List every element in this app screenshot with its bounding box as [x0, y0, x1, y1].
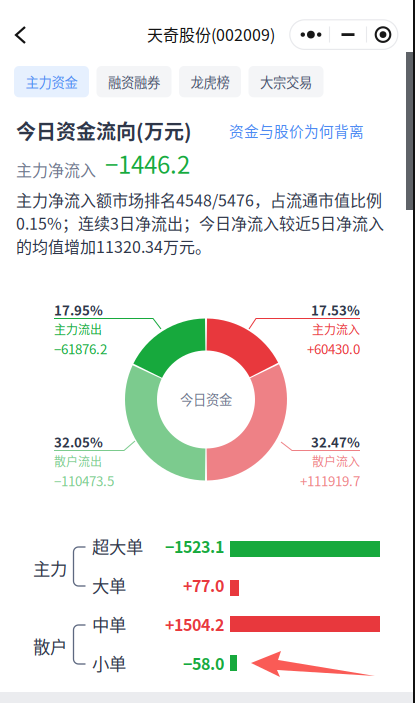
- staticText: 17.53%: [311, 300, 360, 319]
- staticText: 融资融券: [108, 72, 160, 91]
- staticText: 主力净流入额市场排名4548/5476，占流通市值比例0.15%；连续3日净流出…: [16, 188, 384, 257]
- staticText: 17.95%: [54, 300, 103, 319]
- staticText: −1523.1: [165, 534, 224, 558]
- staticText: 32.05%: [54, 432, 103, 451]
- staticText: −1446.2: [105, 146, 190, 181]
- staticText: 大单: [92, 572, 126, 598]
- staticText: 大宗交易: [260, 72, 312, 91]
- staticText: 主力净流入: [16, 158, 96, 181]
- staticText: 主力资金: [25, 72, 77, 91]
- staticText: 小单: [92, 650, 126, 676]
- staticText: 龙虎榜: [190, 72, 229, 91]
- staticText: 今日资金流向(万元): [16, 116, 192, 145]
- button[interactable]: 融资融券: [96, 66, 171, 97]
- staticText: 主力流出: [54, 320, 102, 338]
- button[interactable]: Back: [0, 0, 415, 703]
- staticText: 中单: [92, 611, 126, 637]
- button[interactable]: More: [0, 0, 415, 703]
- button[interactable]: 大宗交易: [248, 66, 323, 97]
- button[interactable]: 资金与股价为何背离: [229, 120, 368, 141]
- staticText: 主力: [33, 555, 67, 581]
- button[interactable]: 主力资金: [14, 66, 89, 97]
- staticText: 资金与股价为何背离: [229, 120, 364, 141]
- staticText: 天奇股份(002009): [147, 22, 275, 46]
- staticText: 超大单: [92, 533, 143, 559]
- staticText: +77.0: [183, 573, 224, 597]
- staticText: 今日资金: [180, 389, 232, 409]
- staticText: −58.0: [183, 651, 224, 675]
- button[interactable]: Close: [0, 0, 415, 703]
- staticText: −61876.2: [54, 339, 107, 358]
- staticText: 散户流入: [312, 452, 360, 470]
- staticText: +1504.2: [165, 612, 224, 636]
- staticText: +60430.0: [307, 339, 360, 358]
- staticText: 32.47%: [311, 432, 360, 451]
- staticText: 主力流入: [312, 320, 360, 338]
- staticText: 散户: [33, 633, 67, 659]
- button[interactable]: Minimize: [0, 0, 415, 703]
- staticText: +111919.7: [300, 471, 360, 490]
- staticText: −110473.5: [54, 471, 114, 490]
- button[interactable]: 龙虎榜: [179, 66, 241, 97]
- staticText: 散户流出: [54, 452, 102, 470]
